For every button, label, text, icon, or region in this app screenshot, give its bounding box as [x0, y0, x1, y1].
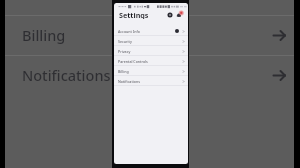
staticText: Security [118, 39, 132, 44]
staticText: Notifications [22, 65, 111, 85]
button[interactable]: Parental Controls [114, 56, 188, 66]
staticText: Billing [22, 25, 66, 45]
button[interactable]: Notifications [0, 56, 300, 95]
staticText: Settings [119, 10, 149, 19]
staticText: Privacy [118, 49, 131, 54]
staticText: Account Info [118, 29, 140, 34]
staticText: Notifications [118, 79, 140, 84]
button[interactable]: Settings [167, 12, 173, 18]
button[interactable]: Notifications [114, 76, 188, 86]
button[interactable]: Privacy [114, 46, 188, 56]
button[interactable]: Security [114, 36, 188, 46]
button[interactable]: Billing [114, 66, 188, 76]
button[interactable]: Billing [0, 16, 300, 55]
button[interactable]: Notifications [176, 11, 184, 19]
button[interactable]: Account Info [114, 26, 188, 36]
staticText: Parental Controls [118, 59, 148, 64]
staticText: Billing [118, 69, 129, 74]
